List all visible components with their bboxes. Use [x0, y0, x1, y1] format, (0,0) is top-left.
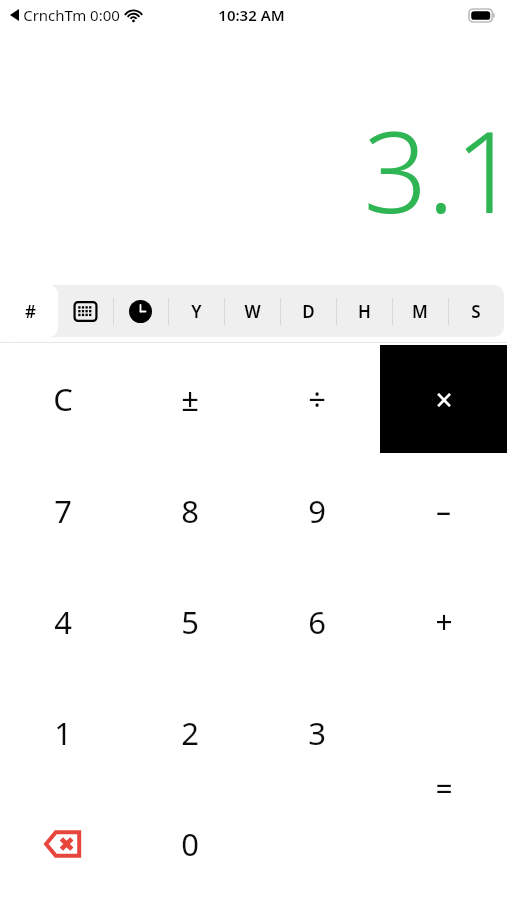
button[interactable]: Backspace — [0, 788, 126, 900]
staticText: – — [436, 490, 451, 531]
staticText: 3 — [308, 712, 326, 754]
button[interactable]: × — [380, 345, 507, 453]
button[interactable]: H — [336, 285, 392, 337]
button[interactable]: 9 — [253, 455, 380, 566]
button[interactable]: ÷ — [253, 343, 380, 455]
button[interactable]: Y — [168, 285, 224, 337]
button[interactable]: 4 — [0, 566, 126, 677]
button[interactable]: + — [380, 566, 507, 677]
staticText: + — [435, 601, 453, 642]
staticText: Y — [191, 300, 202, 323]
staticText: # — [25, 300, 36, 323]
staticText: 2 — [181, 712, 199, 754]
button[interactable]: 0 — [126, 788, 253, 900]
button[interactable]: Date — [58, 285, 113, 337]
button[interactable]: 5 — [126, 566, 253, 677]
staticText: 10:32 AM — [218, 5, 285, 25]
button[interactable]: 7 — [0, 455, 126, 566]
button[interactable]: W — [224, 285, 280, 337]
button[interactable]: 8 — [126, 455, 253, 566]
staticText: 9 — [308, 490, 326, 532]
button[interactable]: ± — [126, 343, 253, 455]
staticText: ÷ — [308, 378, 326, 420]
staticText: C — [53, 378, 73, 420]
button[interactable]: 6 — [253, 566, 380, 677]
staticText: 8 — [181, 490, 199, 532]
button[interactable]: S — [448, 285, 504, 337]
staticText: S — [471, 300, 481, 323]
staticText: ± — [181, 378, 199, 420]
button[interactable]: – — [380, 455, 507, 566]
button[interactable]: M — [392, 285, 448, 337]
staticText: 0 — [181, 823, 199, 865]
button[interactable]: 3 — [253, 677, 380, 788]
button[interactable]: = — [380, 677, 507, 900]
staticText: H — [358, 300, 371, 323]
staticText: = — [435, 768, 453, 809]
button[interactable]: 2 — [126, 677, 253, 788]
staticText: W — [244, 300, 261, 323]
staticText: 7 — [54, 490, 72, 532]
staticText: D — [302, 300, 315, 323]
staticText: M — [412, 300, 428, 323]
button[interactable]: # — [3, 285, 58, 337]
button[interactable]: Time — [113, 285, 168, 337]
button[interactable]: C — [0, 343, 126, 455]
staticText: 6 — [308, 601, 326, 643]
staticText: 1 — [54, 712, 72, 754]
staticText: 4 — [54, 601, 72, 643]
staticText: 5 — [181, 601, 199, 643]
staticText: 3.1 — [363, 93, 507, 246]
staticText: CrnchTm 0:00 — [23, 5, 120, 25]
button[interactable]: 1 — [0, 677, 126, 788]
staticText: × — [435, 379, 453, 420]
button[interactable]: D — [280, 285, 336, 337]
